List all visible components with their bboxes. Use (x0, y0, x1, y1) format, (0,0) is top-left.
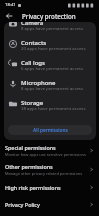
button[interactable]: Back (3, 10, 14, 21)
staticText: 8 apps have permanent access (21, 85, 83, 91)
staticText: Privacy Policy (5, 201, 40, 208)
button[interactable]: Contacts (4, 34, 96, 54)
staticText: Privacy protection (22, 12, 76, 20)
staticText: 20 apps have permanent access (21, 45, 86, 51)
button[interactable]: Special permissions (0, 141, 99, 160)
staticText: Call logs (21, 59, 45, 67)
button[interactable]: Call logs (4, 54, 96, 74)
staticText: 6 apps have permanent access (21, 65, 83, 71)
button[interactable]: Camera (4, 22, 96, 34)
staticText: All permissions (33, 127, 68, 134)
staticText: Contacts (21, 39, 47, 47)
staticText: Camera (21, 22, 44, 27)
button[interactable]: High risk permissions (0, 179, 99, 196)
staticText: Monitor how apps use sensitive permissio… (5, 152, 86, 157)
button[interactable]: Other permissions (0, 160, 99, 179)
staticText: 8 apps have permanent access (21, 25, 83, 31)
button[interactable]: All permissions (8, 125, 92, 135)
staticText: Manage other privacy related permissions (5, 171, 82, 176)
staticText: High risk permissions (5, 184, 61, 191)
button[interactable]: Storage (4, 94, 96, 114)
button[interactable]: Microphone (4, 74, 96, 94)
button[interactable]: Privacy Policy (0, 196, 99, 213)
staticText: Storage (21, 99, 44, 107)
staticText: 38 apps have permanent access (21, 105, 86, 111)
staticText: Special permissions (5, 144, 56, 151)
staticText: Microphone (21, 79, 56, 87)
staticText: 18:41 (5, 2, 16, 8)
staticText: Other permissions (5, 163, 53, 170)
